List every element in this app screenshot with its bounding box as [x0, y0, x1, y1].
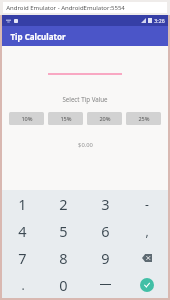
staticText: 5	[59, 221, 68, 241]
staticText: 7	[18, 248, 27, 268]
staticText: $0.00	[78, 141, 93, 149]
button[interactable]: 20%	[87, 112, 122, 125]
button[interactable]: -	[126, 190, 168, 217]
button[interactable]	[48, 63, 122, 75]
button[interactable]: 3	[84, 190, 126, 217]
button[interactable]: 0	[43, 271, 84, 298]
button[interactable]: 6	[84, 217, 126, 244]
button[interactable]: 8	[43, 244, 84, 271]
staticText: -	[145, 196, 149, 212]
button[interactable]: 2	[43, 190, 84, 217]
button[interactable]: 15%	[48, 112, 83, 125]
staticText: 15%	[60, 115, 72, 123]
staticText: ,	[145, 223, 149, 239]
staticText: 0	[59, 275, 68, 295]
staticText: 2	[59, 194, 68, 214]
button[interactable]: 1	[2, 190, 43, 217]
staticText: Tip Calculator	[10, 31, 66, 42]
staticText: 3:26	[154, 17, 165, 24]
button[interactable]: Space	[84, 271, 126, 298]
staticText: 25%	[138, 115, 150, 123]
button[interactable]: 4	[2, 217, 43, 244]
button[interactable]: 10%	[9, 112, 44, 125]
staticText: 9	[101, 248, 110, 268]
staticText: 8	[59, 248, 68, 268]
button[interactable]: ,	[126, 217, 168, 244]
staticText: 10%	[21, 115, 33, 123]
staticText: Android Emulator - AndroidEmulator:5554	[6, 4, 125, 12]
button[interactable]: 5	[43, 217, 84, 244]
staticText: 3	[101, 194, 110, 214]
button[interactable]: .	[2, 271, 43, 298]
staticText: .	[21, 277, 25, 293]
button[interactable]: 7	[2, 244, 43, 271]
staticText: 1	[18, 194, 27, 214]
button[interactable]: 25%	[126, 112, 161, 125]
button[interactable]: Done	[126, 271, 168, 298]
staticText: 6	[101, 221, 110, 241]
button[interactable]: 9	[84, 244, 126, 271]
button[interactable]: Backspace	[126, 244, 168, 271]
staticText: 4	[18, 221, 27, 241]
staticText: 20%	[99, 115, 111, 123]
staticText: Select Tip Value	[62, 95, 108, 103]
